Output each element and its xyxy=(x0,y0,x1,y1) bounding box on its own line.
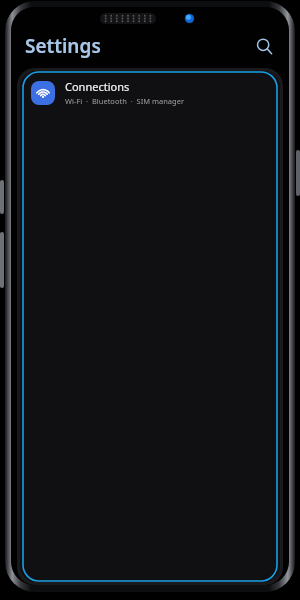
button[interactable]: Search xyxy=(249,31,279,61)
staticText: Connections xyxy=(65,79,130,94)
staticText: Settings xyxy=(25,33,101,59)
staticText: Wi-Fi · Bluetooth · SIM manager xyxy=(65,96,184,106)
button[interactable]: Connections xyxy=(20,71,280,114)
